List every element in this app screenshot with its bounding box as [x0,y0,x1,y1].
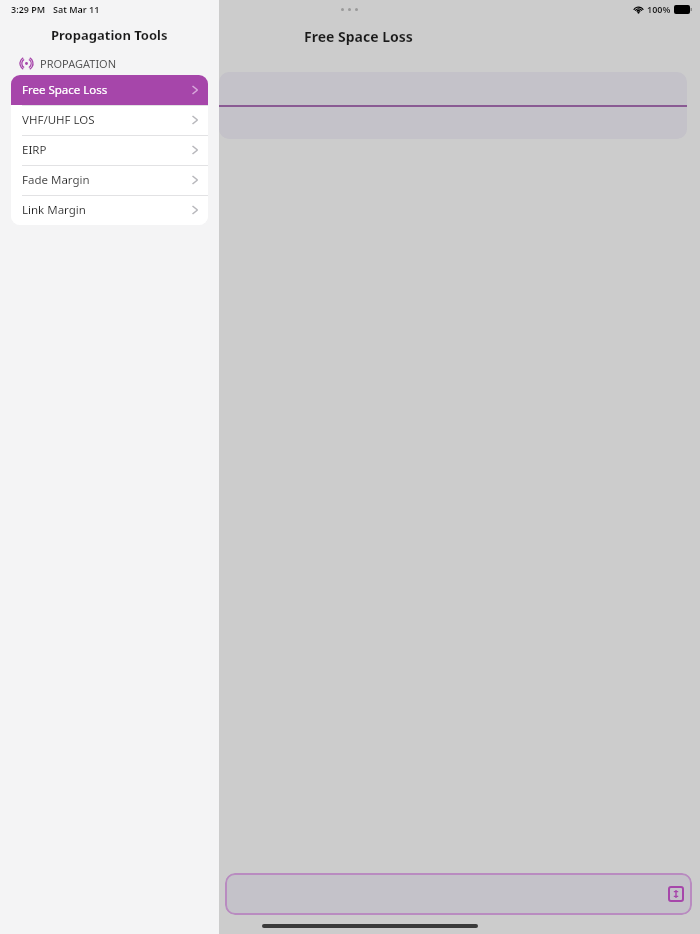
staticText: Free Space Loss [304,27,413,46]
staticText: Propagation Tools [51,26,168,44]
button[interactable]: EIRP [11,135,208,165]
staticText: Link Margin [22,202,86,218]
button[interactable]: Link Margin [11,195,208,225]
staticText: Sat Mar 11 [53,3,100,15]
staticText: 100% [647,3,671,15]
staticText: Free Space Loss [22,82,108,98]
staticText: VHF/UHF LOS [22,112,95,128]
button[interactable]: Resize input [225,873,692,915]
button[interactable]: VHF/UHF LOS [11,105,208,135]
staticText: Fade Margin [22,172,90,188]
button[interactable]: Resize input [668,886,684,902]
staticText: 3:29 PM [11,3,46,15]
staticText: PROPAGATION [40,56,117,71]
button[interactable]: Fade Margin [11,165,208,195]
button[interactable]: Free Space Loss [11,75,208,105]
staticText: EIRP [22,142,47,158]
